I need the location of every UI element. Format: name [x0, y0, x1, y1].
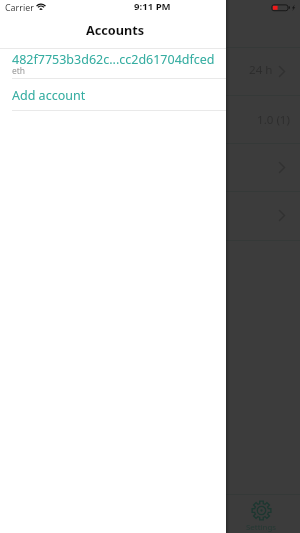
- button[interactable]: Open: [0, 143, 300, 191]
- staticText: Add account: [12, 87, 86, 104]
- staticText: Settings: [246, 522, 277, 533]
- staticText: 9:11 PM: [134, 0, 171, 13]
- button[interactable]: Accounts: [0, 20, 226, 48]
- button[interactable]: Settings: [224, 494, 299, 533]
- staticText: 1.0 (1): [257, 112, 290, 128]
- button[interactable]: 482f7753b3d62c...cc2d61704dfced: [0, 49, 226, 79]
- staticText: 24 h: [249, 62, 273, 78]
- button[interactable]: 1.0 (1): [0, 95, 300, 144]
- staticText: eth: [12, 65, 26, 77]
- staticText: 482f7753b3d62c...cc2d61704dfced: [12, 51, 215, 68]
- staticText: Accounts: [86, 21, 145, 38]
- staticText: Carrier: [5, 1, 34, 13]
- button[interactable]: Add account: [0, 79, 226, 110]
- button[interactable]: Open: [0, 191, 300, 240]
- button[interactable]: 24 h: [0, 47, 300, 95]
